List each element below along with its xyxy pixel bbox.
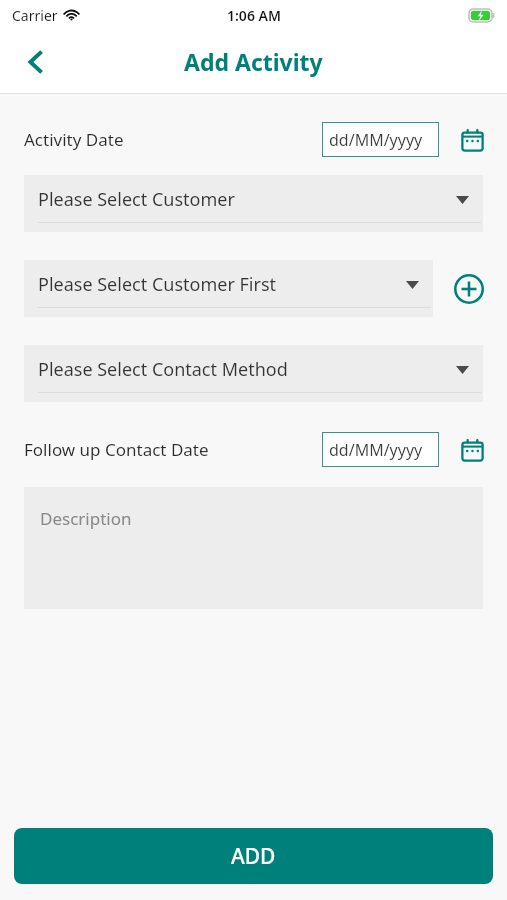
staticText: 1:06 AM	[227, 6, 281, 25]
button[interactable]: Please Select Customer	[24, 175, 483, 232]
button[interactable]: Add customer	[449, 269, 489, 309]
staticText: ADD	[231, 842, 276, 871]
staticText: Carrier	[12, 6, 58, 25]
button[interactable]: Pick date	[455, 123, 489, 157]
button[interactable]: Description	[24, 487, 483, 609]
staticText: Follow up Contact Date	[24, 438, 209, 461]
button[interactable]: Please Select Contact Method	[24, 345, 483, 402]
staticText: Please Select Customer First	[38, 272, 277, 297]
staticText: dd/MM/yyyy	[329, 129, 423, 151]
button[interactable]: Pick date	[455, 433, 489, 467]
staticText: Activity Date	[24, 128, 124, 151]
button[interactable]: ADD	[14, 828, 493, 884]
button[interactable]: dd/MM/yyyy	[322, 122, 439, 157]
staticText: Please Select Customer	[38, 187, 235, 212]
button[interactable]: Please Select Customer First	[24, 260, 433, 317]
button[interactable]: dd/MM/yyyy	[322, 432, 439, 467]
staticText: Please Select Contact Method	[38, 357, 288, 382]
staticText: dd/MM/yyyy	[329, 439, 423, 461]
staticText: Description	[40, 507, 132, 530]
button[interactable]: Back	[12, 38, 60, 86]
staticText: Add Activity	[184, 46, 323, 77]
